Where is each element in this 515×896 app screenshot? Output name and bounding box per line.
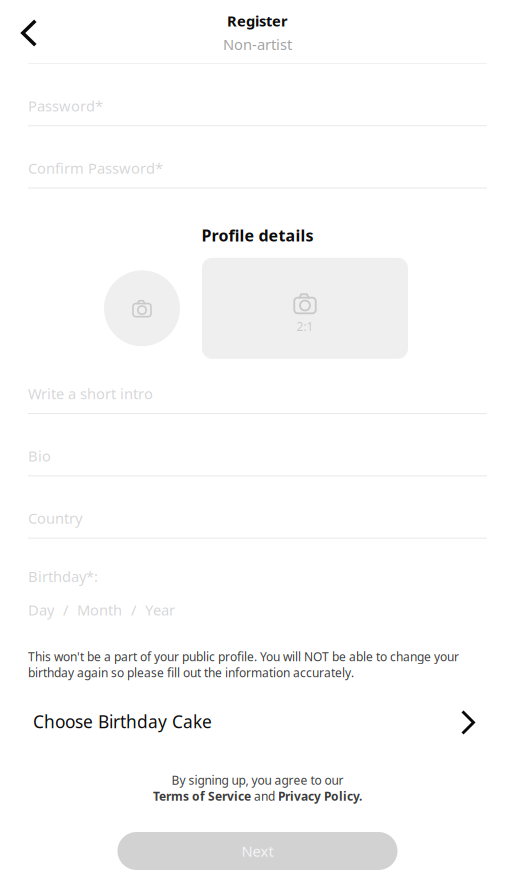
- staticText: Password*: [28, 96, 103, 115]
- staticText: Birthday*:: [28, 567, 98, 586]
- staticText: Day: [28, 600, 54, 620]
- staticText: 2:1: [296, 318, 313, 334]
- staticText: Non-artist: [223, 34, 292, 54]
- button[interactable]: Back: [0, 6, 50, 57]
- staticText: Choose Birthday Cake: [33, 710, 212, 733]
- staticText: By signing up, you agree to our: [171, 772, 343, 788]
- button[interactable]: Choose Birthday Cake: [0, 680, 515, 755]
- staticText: /: [63, 600, 68, 620]
- button[interactable]: Next: [117, 832, 397, 870]
- staticText: Country: [28, 508, 82, 528]
- staticText: Confirm Password*: [28, 158, 163, 178]
- staticText: Register: [227, 11, 288, 30]
- staticText: Year: [145, 600, 175, 620]
- staticText: /: [131, 600, 136, 620]
- button[interactable]: Add banner photo: [202, 258, 408, 359]
- staticText: Profile details: [201, 225, 313, 246]
- staticText: This won't be a part of your public prof…: [28, 649, 459, 680]
- staticText: Bio: [28, 446, 51, 466]
- staticText: Write a short intro: [28, 384, 153, 403]
- staticText: Month: [77, 600, 122, 620]
- staticText: Terms of Service and Privacy Policy.: [153, 788, 362, 804]
- staticText: Next: [241, 841, 273, 861]
- button[interactable]: Add profile photo: [104, 270, 180, 346]
